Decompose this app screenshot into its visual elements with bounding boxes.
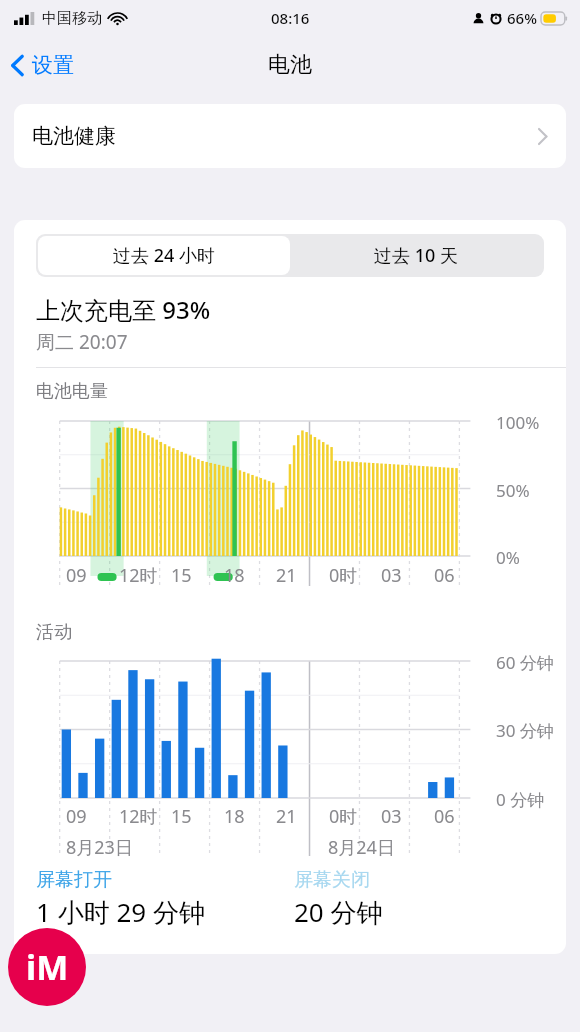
button[interactable]: 电池健康 [14, 104, 566, 168]
staticText: 0 分钟 [496, 788, 545, 811]
button[interactable]: 过去 10 天 [290, 236, 542, 275]
staticText: 过去 24 小时 [113, 243, 215, 268]
staticText: iM [26, 944, 69, 990]
staticText: 周二 20:07 [36, 329, 128, 355]
staticText: 15 [171, 563, 192, 588]
staticText: 中国移动 [42, 9, 102, 28]
staticText: 电池健康 [32, 123, 116, 149]
staticText: 过去 10 天 [374, 243, 458, 268]
staticText: 0时 [329, 563, 358, 588]
staticText: 08:16 [271, 8, 310, 28]
staticText: 0时 [329, 804, 358, 829]
staticText: 活动 [36, 621, 72, 644]
staticText: 上次充电至 93% [36, 293, 211, 326]
staticText: 8月24日 [328, 835, 395, 860]
staticText: 屏幕关闭 [294, 868, 370, 892]
staticText: 60 分钟 [496, 651, 554, 674]
staticText: 1 小时 29 分钟 [36, 894, 205, 930]
staticText: 21 [276, 563, 297, 588]
other: Battery health details [537, 127, 548, 146]
staticText: 电池 [268, 51, 312, 79]
button[interactable]: 设置 [0, 44, 90, 86]
staticText: 66% [507, 8, 537, 28]
staticText: 100% [496, 411, 540, 434]
staticText: 06 [434, 804, 455, 829]
staticText: 屏幕打开 [36, 868, 112, 892]
staticText: 06 [434, 563, 455, 588]
staticText: 30 分钟 [496, 719, 554, 742]
staticText: 21 [276, 804, 297, 829]
staticText: 20 分钟 [294, 894, 383, 930]
staticText: 03 [381, 563, 402, 588]
button[interactable]: 过去 24 小时 [38, 236, 290, 275]
staticText: 03 [381, 804, 402, 829]
staticText: 09 [66, 804, 87, 829]
staticText: 电池电量 [36, 380, 108, 403]
staticText: 0% [496, 546, 520, 569]
staticText: 18 [224, 563, 245, 588]
staticText: 12时 [119, 804, 158, 829]
staticText: 12时 [119, 563, 158, 588]
staticText: 50% [496, 479, 530, 502]
staticText: 18 [224, 804, 245, 829]
staticText: 15 [171, 804, 192, 829]
staticText: 设置 [32, 52, 74, 78]
staticText: 8月23日 [66, 835, 133, 860]
staticText: 09 [66, 563, 87, 588]
